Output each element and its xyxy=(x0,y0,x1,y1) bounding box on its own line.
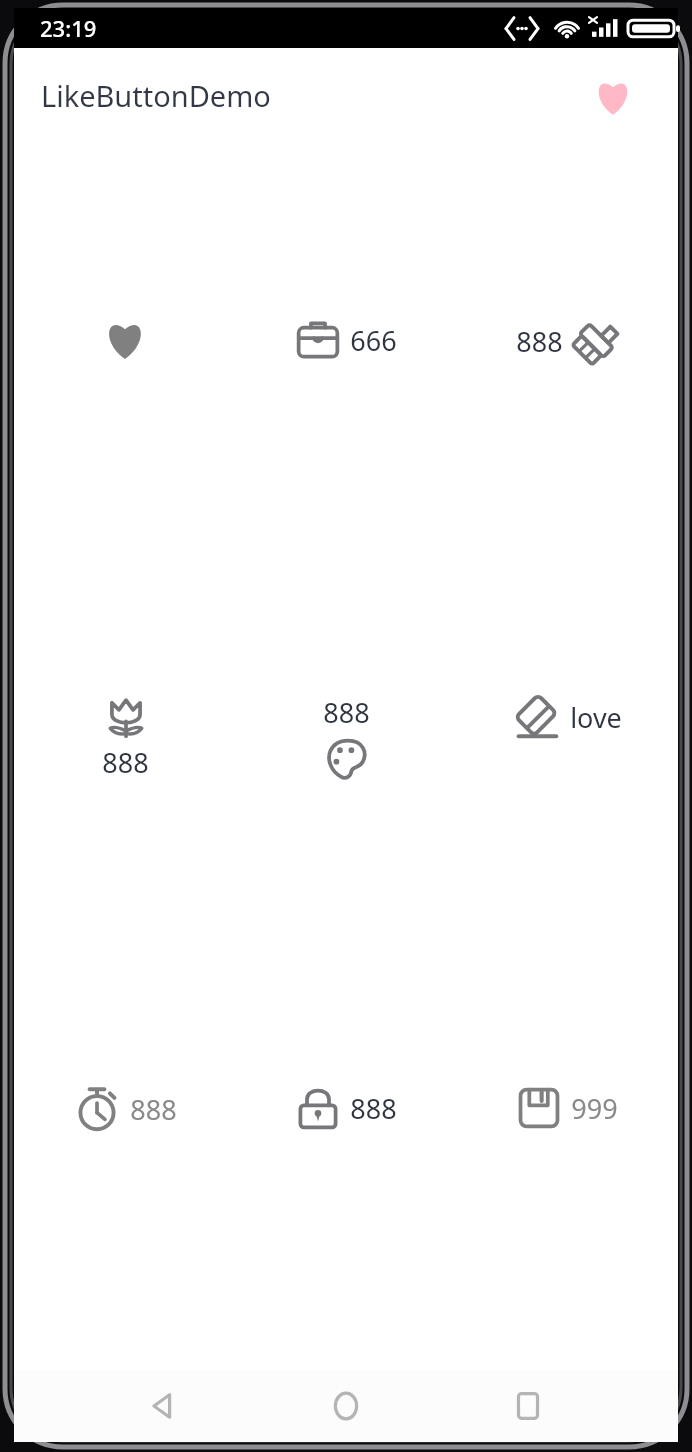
staticText: 999 xyxy=(571,1090,618,1127)
button[interactable]: Flower 888 xyxy=(14,694,236,781)
button[interactable]: Eraser love xyxy=(457,694,678,740)
button[interactable]: Stopwatch 888 xyxy=(14,1086,236,1132)
staticText: love xyxy=(570,699,622,736)
button[interactable]: Save 999 xyxy=(457,1086,678,1130)
button[interactable]: Recents xyxy=(496,1374,560,1438)
button[interactable]: Brush 888 xyxy=(457,318,678,364)
button[interactable]: Palette 888 xyxy=(236,694,457,781)
button[interactable]: Home xyxy=(314,1374,378,1438)
staticText: 888 xyxy=(130,1091,177,1128)
button[interactable]: Lock 888 xyxy=(236,1086,457,1130)
staticText: 23:19 xyxy=(40,13,97,43)
staticText: 888 xyxy=(516,323,563,360)
staticText: 888 xyxy=(102,744,149,781)
button[interactable]: Briefcase 666 xyxy=(236,318,457,362)
button[interactable]: Like heart xyxy=(14,318,236,362)
staticText: 888 xyxy=(323,694,370,731)
staticText: 666 xyxy=(350,322,397,359)
staticText: LikeButtonDemo xyxy=(41,76,271,115)
button[interactable]: Back xyxy=(132,1374,196,1438)
button[interactable]: Like xyxy=(590,73,636,119)
staticText: 888 xyxy=(350,1090,397,1127)
